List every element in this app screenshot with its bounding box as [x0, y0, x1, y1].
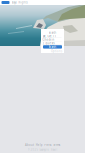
staticText: Search — [48, 31, 56, 34]
button[interactable]: 2 guests — [43, 42, 62, 45]
button[interactable]: Options — [51, 49, 62, 53]
button[interactable]: Help — [36, 143, 43, 147]
button[interactable]: Check in — [43, 38, 62, 42]
staticText: Terms — [53, 143, 60, 147]
button[interactable]: Sat, Oct 11 — [43, 35, 62, 38]
button[interactable]: Search — [43, 45, 62, 49]
staticText: © 2025 Example Travel — [27, 148, 57, 151]
staticText: Check in — [42, 38, 54, 41]
staticText: Press — [44, 143, 51, 147]
button[interactable]: About — [25, 143, 34, 147]
staticText: Sat, Oct 11 — [42, 34, 56, 38]
staticText: Help — [36, 143, 43, 147]
staticText: About — [25, 143, 34, 147]
staticText: Search — [48, 45, 56, 49]
button[interactable]: Stays Flights — [10, 1, 28, 4]
staticText: Options — [51, 49, 62, 53]
button[interactable]: Press — [44, 143, 51, 147]
staticText: Stays Flights — [11, 1, 27, 4]
button[interactable]: Terms — [53, 143, 60, 147]
staticText: 2 guests — [42, 41, 54, 45]
button[interactable]: Home — [0, 0, 10, 5]
